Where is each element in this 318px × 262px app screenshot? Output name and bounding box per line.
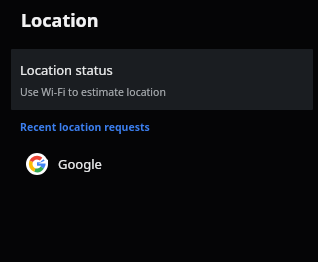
staticText: Location: [21, 8, 99, 33]
staticText: Use Wi-Fi to estimate location: [20, 85, 166, 99]
staticText: Location status: [20, 61, 113, 79]
button[interactable]: Google: [0, 148, 318, 180]
other: Google: [26, 153, 48, 175]
button[interactable]: Location status: [11, 49, 313, 110]
staticText: Google: [58, 155, 102, 173]
staticText: Recent location requests: [20, 120, 150, 134]
